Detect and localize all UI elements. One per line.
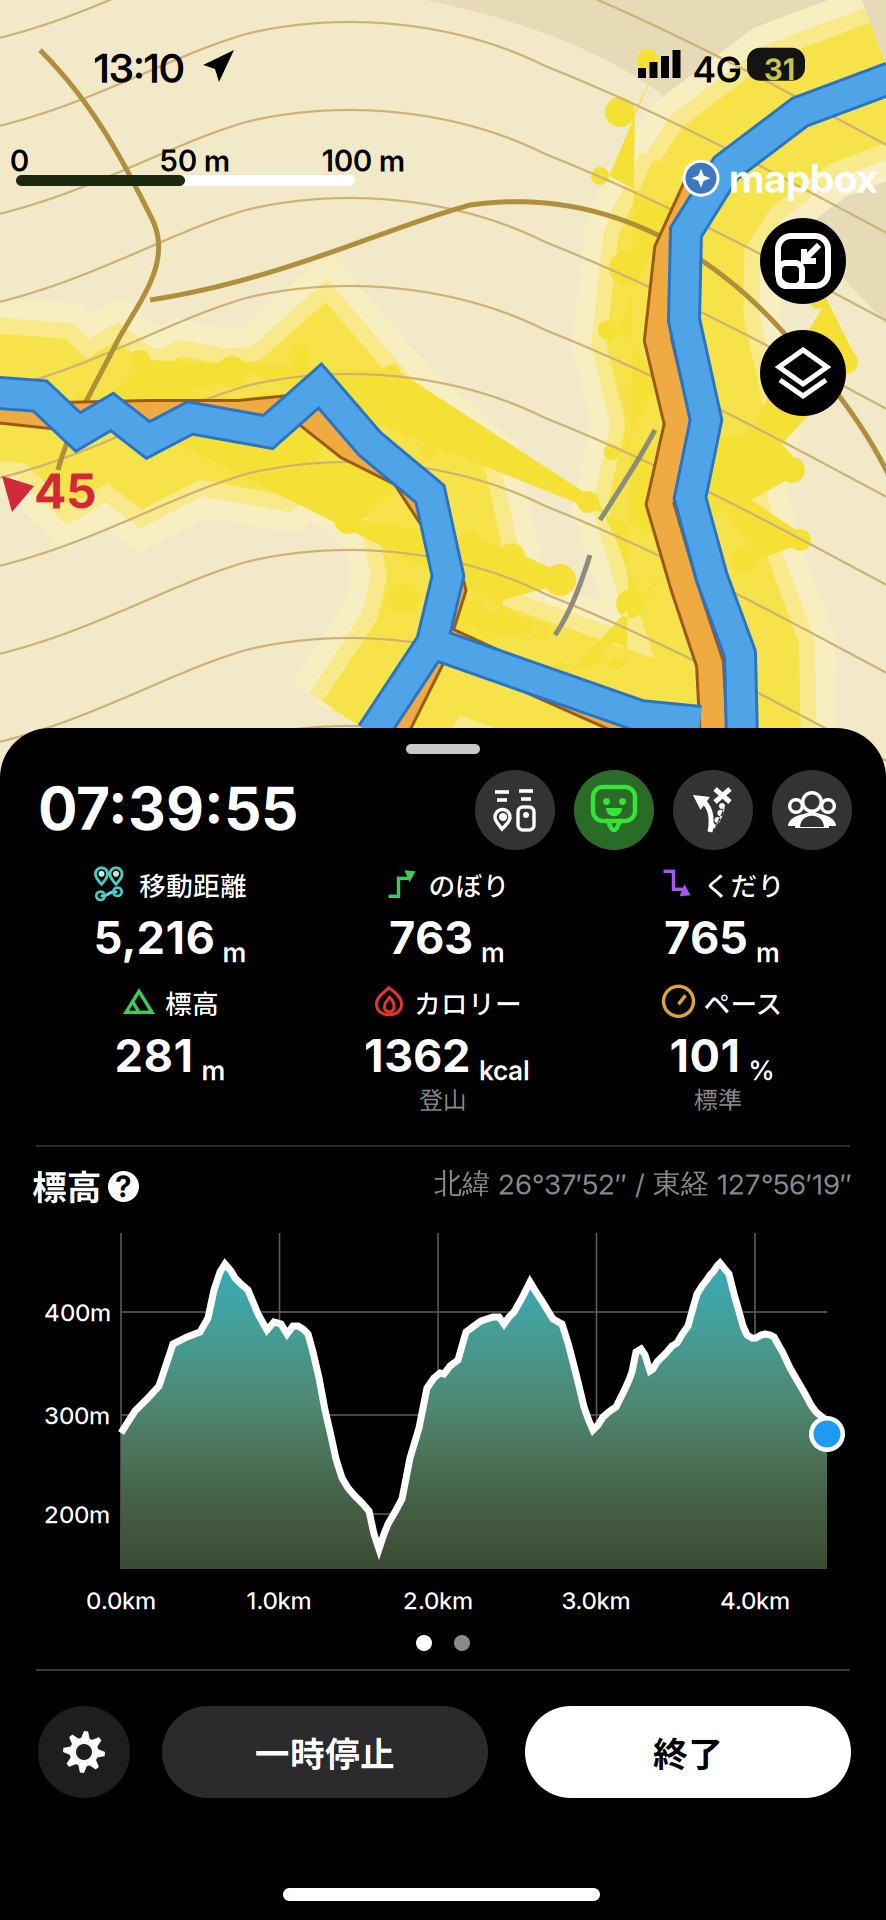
staticText: m [481,936,505,969]
staticText: m [201,1054,225,1087]
button[interactable]: About elevation [108,1171,139,1202]
staticText: 終了 [653,1727,723,1777]
staticText: 4G [693,49,742,91]
staticText: 07:39:55 [38,773,298,844]
staticText: 31 [764,52,795,87]
staticText: 200m [44,1500,110,1529]
staticText: 5,216 [93,910,214,965]
staticText: m [222,936,246,969]
staticText: 標準 [694,1081,742,1116]
staticText: 400m [44,1298,111,1327]
staticText: 北緯 26°37′52″ / 東経 127°56′19″ [434,1166,852,1201]
staticText: 移動距離 [139,865,247,904]
button[interactable]: Messages [574,770,654,850]
staticText: 13:10 [94,44,185,92]
button[interactable]: 終了 [525,1706,851,1798]
staticText: % [748,1054,774,1087]
staticText: 1.0km [246,1586,311,1615]
staticText: 300m [44,1401,110,1430]
staticText: 0 [10,143,29,178]
staticText: mapbox [729,154,878,202]
staticText: カロリー [414,983,522,1022]
button[interactable]: Settings [38,1706,130,1798]
staticText: 1362 [364,1028,471,1083]
staticText: 登山 [419,1081,467,1116]
staticText: 標高 [32,1160,102,1210]
staticText: 763 [389,910,473,965]
staticText: 281 [114,1028,193,1083]
staticText: m [756,936,780,969]
button[interactable]: Members [772,770,852,850]
staticText: 101 [669,1028,740,1083]
staticText: kcal [479,1054,530,1087]
staticText: 一時停止 [255,1727,395,1777]
button[interactable]: Map layers [760,330,846,416]
staticText: 標高 [165,983,219,1022]
button[interactable]: 一時停止 [162,1706,488,1798]
button[interactable]: Route [673,770,753,850]
staticText: 3.0km [561,1586,630,1615]
staticText: 2.0km [403,1586,473,1615]
staticText: 45 [34,462,97,520]
staticText: 4.0km [720,1586,790,1615]
staticText: 765 [664,910,748,965]
staticText: 100 m [322,143,405,178]
staticText: ペース [703,983,782,1022]
staticText: のぼり [428,865,509,904]
staticText: くだり [703,865,784,904]
staticText: 0.0km [86,1586,156,1615]
button[interactable]: Resize map [760,218,846,304]
staticText: ? [115,1169,132,1204]
staticText: 50 m [160,143,230,178]
button[interactable]: Waypoints [475,770,555,850]
